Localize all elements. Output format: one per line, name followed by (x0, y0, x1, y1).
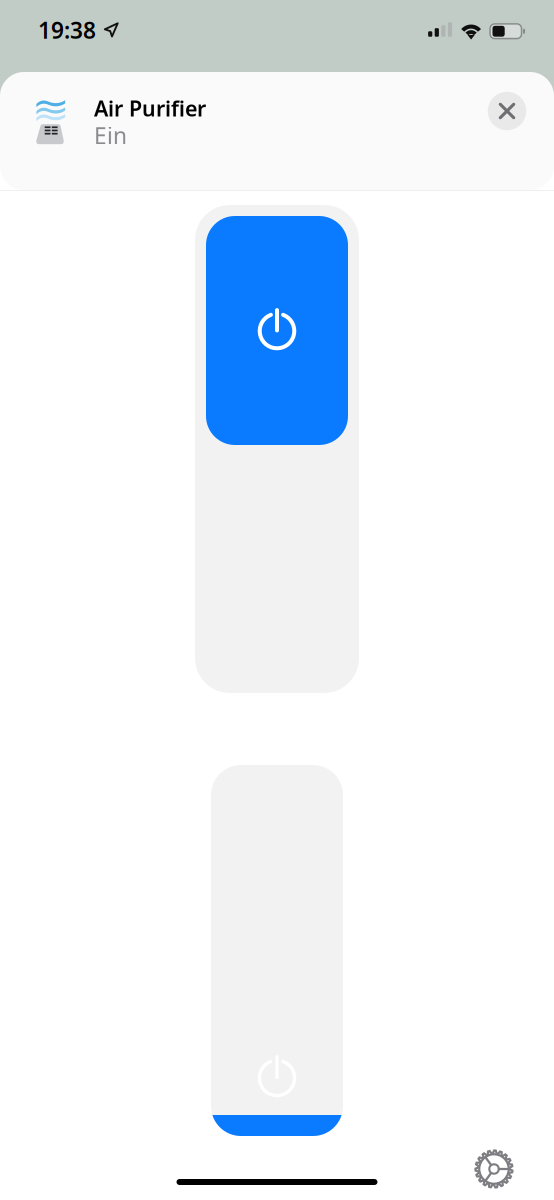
staticText: 19:38 (38, 15, 96, 45)
staticText: Air Purifier (94, 94, 206, 122)
button[interactable]: Power on (195, 205, 359, 693)
button[interactable]: Power (211, 765, 343, 1136)
button[interactable]: Close (485, 89, 529, 133)
staticText: Ein (94, 120, 127, 150)
button[interactable]: Settings (473, 1148, 515, 1190)
